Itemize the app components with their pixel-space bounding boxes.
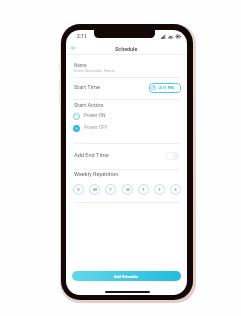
staticText: Power ON — [84, 113, 106, 119]
button[interactable]: F — [154, 184, 165, 195]
staticText: Add Schedule — [114, 274, 139, 279]
staticText: Weekly Repetition — [74, 171, 119, 178]
staticText: Add End Time — [74, 152, 109, 159]
staticText: Name — [74, 63, 87, 69]
staticText: M — [93, 187, 97, 192]
staticText: Start Time — [74, 84, 100, 91]
button[interactable]: S — [170, 184, 181, 195]
staticText: F — [158, 187, 161, 192]
staticText: T — [109, 187, 112, 192]
button[interactable]: Back — [66, 42, 81, 53]
button[interactable]: W — [122, 184, 133, 195]
staticText: Schedule — [115, 46, 138, 52]
staticText: Enter Schedule Name — [74, 68, 116, 73]
button[interactable]: T — [105, 184, 116, 195]
button[interactable]: Add End Time toggle — [166, 152, 179, 160]
staticText: T — [142, 187, 145, 192]
staticText: W — [126, 187, 130, 192]
button[interactable]: 2:11 PM — [149, 83, 181, 93]
staticText: Start Action — [74, 102, 104, 109]
button[interactable]: S — [73, 184, 84, 195]
button[interactable]: Power ON — [73, 112, 106, 120]
staticText: S — [77, 187, 80, 192]
button[interactable]: Add Schedule — [72, 271, 181, 281]
staticText: 2:11 PM — [159, 85, 174, 90]
button[interactable]: M — [89, 184, 100, 195]
button[interactable] — [66, 144, 187, 169]
button[interactable] — [66, 78, 187, 99]
staticText: S — [174, 187, 177, 192]
button[interactable]: Power OFF — [73, 124, 108, 132]
staticText: 2:11 — [77, 33, 87, 39]
button[interactable]: T — [138, 184, 149, 195]
staticText: Power OFF — [84, 125, 108, 131]
